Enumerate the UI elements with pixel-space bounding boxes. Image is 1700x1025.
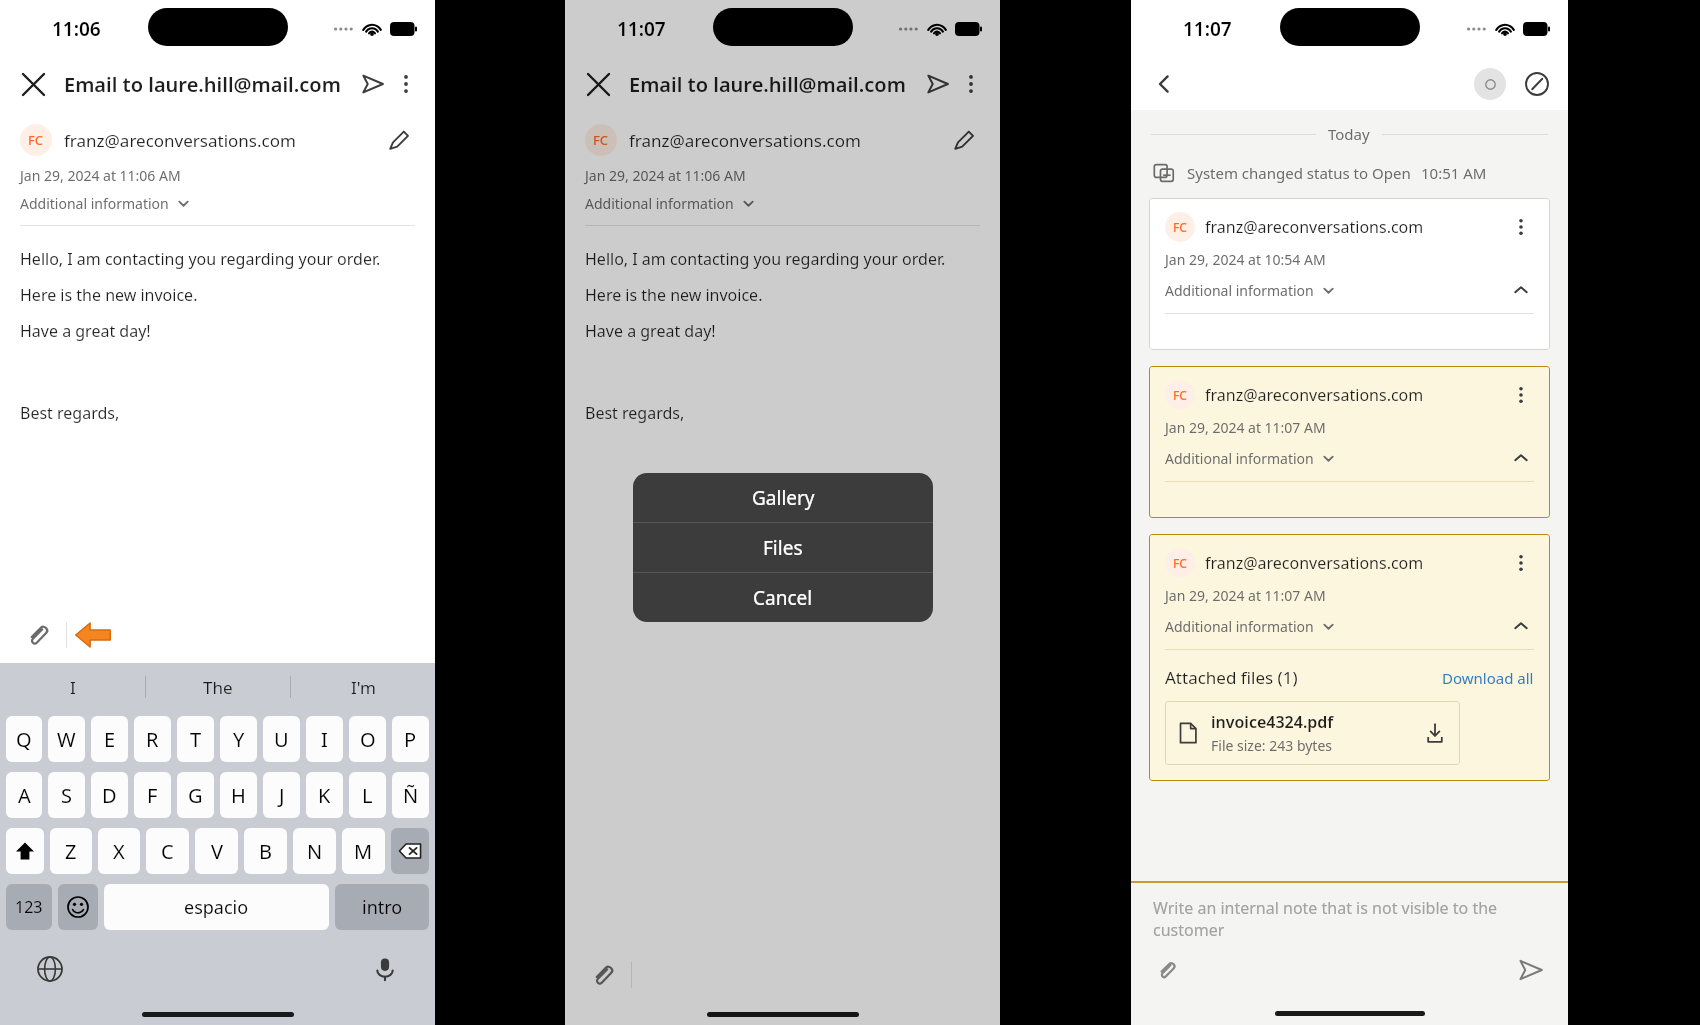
button[interactable]: F xyxy=(134,772,171,818)
button[interactable]: intro xyxy=(335,884,429,930)
staticText: Attached files (1) xyxy=(1165,666,1298,689)
button[interactable]: Attach file xyxy=(22,620,52,650)
button[interactable]: N xyxy=(293,828,336,874)
button[interactable]: Files xyxy=(633,523,933,572)
staticText: I xyxy=(70,676,76,699)
button[interactable]: Change keyboard xyxy=(34,953,66,985)
button[interactable]: H xyxy=(220,772,257,818)
staticText: FC xyxy=(1173,555,1187,571)
button[interactable]: D xyxy=(91,772,128,818)
button[interactable]: O xyxy=(349,716,386,762)
button[interactable]: Edit xyxy=(383,124,415,156)
button[interactable]: More options xyxy=(1508,550,1534,576)
staticText: Write an internal note that is not visib… xyxy=(1153,897,1546,941)
staticText: Jan 29, 2024 at 11:06 AM xyxy=(20,166,181,185)
button[interactable]: E xyxy=(91,716,128,762)
button[interactable]: S xyxy=(48,772,85,818)
button[interactable]: Shift xyxy=(6,828,44,874)
button[interactable]: Additional information xyxy=(585,194,756,213)
staticText: FC xyxy=(1173,219,1187,235)
button[interactable]: Additional information xyxy=(20,194,191,213)
button[interactable]: V xyxy=(195,828,238,874)
button[interactable]: J xyxy=(263,772,300,818)
button[interactable]: C xyxy=(146,828,189,874)
button[interactable]: 123 xyxy=(6,884,52,930)
button[interactable]: M xyxy=(342,828,385,874)
button[interactable]: B xyxy=(244,828,287,874)
staticText: franz@areconversations.com xyxy=(1205,384,1424,406)
button[interactable]: Ñ xyxy=(392,772,429,818)
button[interactable]: Y xyxy=(220,716,257,762)
button[interactable]: espacio xyxy=(104,884,329,930)
staticText: franz@areconversations.com xyxy=(1205,216,1424,238)
staticText: FC xyxy=(1173,387,1187,403)
button[interactable]: Additional information xyxy=(1165,449,1336,468)
button[interactable]: Send note xyxy=(1514,953,1548,987)
button[interactable]: More options xyxy=(956,69,986,99)
staticText: espacio xyxy=(184,895,249,920)
button[interactable]: Close xyxy=(14,65,52,103)
button[interactable]: FC xyxy=(1149,534,1550,781)
button[interactable]: Download xyxy=(1422,720,1448,746)
button[interactable]: More options xyxy=(1508,382,1534,408)
button[interactable]: Attach file xyxy=(1151,955,1181,985)
button[interactable]: The xyxy=(146,663,290,711)
button[interactable]: P xyxy=(392,716,429,762)
staticText: Z xyxy=(65,838,77,865)
button[interactable]: invoice4324.pdf xyxy=(1165,701,1460,765)
staticText: V xyxy=(211,838,223,865)
button[interactable]: Collapse xyxy=(1508,613,1534,639)
button[interactable]: More options xyxy=(391,69,421,99)
button[interactable]: Additional information xyxy=(1165,617,1336,636)
staticText: Ñ xyxy=(403,782,419,809)
button[interactable]: Attach file xyxy=(587,960,617,990)
button[interactable]: Collapse xyxy=(1508,277,1534,303)
button[interactable]: I'm xyxy=(291,663,435,711)
button[interactable]: Send xyxy=(920,66,956,102)
button[interactable]: Collapse xyxy=(1508,445,1534,471)
staticText: Hello, I am contacting you regarding you… xyxy=(585,248,946,270)
button[interactable]: R xyxy=(134,716,171,762)
button[interactable]: W xyxy=(48,716,85,762)
staticText: Have a great day! xyxy=(585,320,716,342)
button[interactable]: Close xyxy=(579,65,617,103)
button[interactable]: Download all xyxy=(1442,668,1534,688)
staticText: P xyxy=(404,726,417,753)
staticText: 10:51 AM xyxy=(1421,163,1487,183)
button[interactable]: Edit xyxy=(948,124,980,156)
button[interactable]: T xyxy=(177,716,214,762)
button[interactable]: Cancel xyxy=(633,573,933,622)
button[interactable]: A xyxy=(6,772,42,818)
button[interactable]: Status xyxy=(1474,68,1506,100)
button[interactable]: U xyxy=(263,716,300,762)
staticText: T xyxy=(190,726,202,753)
button[interactable]: G xyxy=(177,772,214,818)
button[interactable]: X xyxy=(98,828,140,874)
button[interactable]: Navigate xyxy=(1520,67,1554,101)
button[interactable]: I xyxy=(306,716,343,762)
button[interactable]: Gallery xyxy=(633,473,933,522)
staticText: Best regards, xyxy=(585,402,685,424)
button[interactable]: I xyxy=(0,663,145,711)
staticText: Gallery xyxy=(752,485,815,511)
button[interactable]: Z xyxy=(50,828,92,874)
button[interactable]: Send xyxy=(355,66,391,102)
button[interactable]: Backspace xyxy=(391,828,429,874)
staticText: E xyxy=(104,726,116,753)
button[interactable]: FC xyxy=(1149,198,1550,350)
button[interactable]: Back xyxy=(1145,65,1183,103)
staticText: File size: 243 bytes xyxy=(1211,736,1333,755)
staticText: Y xyxy=(233,726,245,753)
staticText: Jan 29, 2024 at 11:07 AM xyxy=(1165,418,1326,437)
button[interactable]: Additional information xyxy=(1165,281,1336,300)
button[interactable]: Voice input xyxy=(369,953,401,985)
button[interactable]: L xyxy=(349,772,386,818)
button[interactable]: K xyxy=(306,772,343,818)
staticText: Cancel xyxy=(753,585,813,611)
staticText: Jan 29, 2024 at 11:06 AM xyxy=(585,166,746,185)
button[interactable]: More options xyxy=(1508,214,1534,240)
button[interactable]: Emoji xyxy=(58,884,98,930)
button[interactable]: FC xyxy=(1149,366,1550,518)
staticText: Best regards, xyxy=(20,402,120,424)
button[interactable]: Q xyxy=(6,716,42,762)
